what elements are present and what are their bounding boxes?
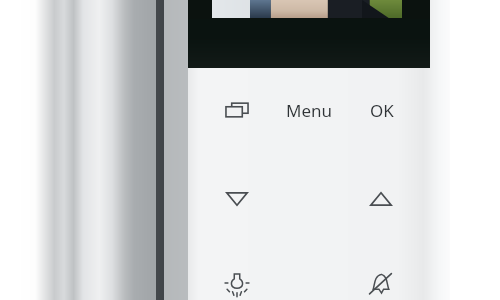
button[interactable]: Switch camera view (219, 96, 255, 124)
button[interactable]: Mute ringer (362, 268, 400, 300)
button[interactable]: Light (219, 268, 255, 300)
button[interactable]: Down (220, 185, 254, 213)
button[interactable]: Up (364, 185, 398, 213)
staticText: OK (370, 99, 394, 122)
staticText: Menu (286, 99, 333, 122)
button[interactable]: OK (362, 96, 402, 124)
button[interactable]: Menu (283, 96, 335, 124)
